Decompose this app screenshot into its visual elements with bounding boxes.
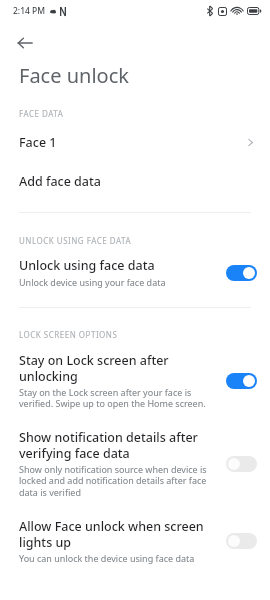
staticText: Face 1 xyxy=(19,134,245,151)
staticText: Unlock using face data xyxy=(19,257,155,274)
button[interactable]: Face 1 xyxy=(0,132,270,153)
staticText: FACE DATA xyxy=(19,108,64,119)
button[interactable]: Add face data xyxy=(0,171,270,192)
staticText: You can unlock the device using face dat… xyxy=(19,552,195,564)
staticText: Face unlock xyxy=(19,62,129,89)
staticText: LOCK SCREEN OPTIONS xyxy=(19,329,118,340)
button[interactable]: Back xyxy=(10,28,40,58)
staticText: UNLOCK USING FACE DATA xyxy=(19,235,131,246)
staticText: Unlock device using your face data xyxy=(19,276,166,288)
staticText: Stay on Lock screen after unlocking xyxy=(19,352,218,384)
button[interactable]: Off xyxy=(226,456,257,472)
button[interactable]: On xyxy=(226,373,257,389)
staticText: Add face data xyxy=(19,173,101,190)
staticText: Show notification details after verifyin… xyxy=(19,429,218,461)
staticText: Show only notification source when devic… xyxy=(19,463,218,499)
staticText: 2:14 PM xyxy=(13,5,46,17)
button[interactable]: Allow Face unlock when screen lights up xyxy=(0,518,270,564)
button[interactable]: On xyxy=(226,265,257,281)
staticText: Allow Face unlock when screen lights up xyxy=(19,518,218,550)
button[interactable]: Show notification details after verifyin… xyxy=(0,429,270,499)
button[interactable]: Stay on Lock screen after unlocking xyxy=(0,352,270,410)
button[interactable]: Unlock using face data xyxy=(0,257,270,288)
staticText: Stay on the Lock screen after your face … xyxy=(19,386,218,410)
button[interactable]: Off xyxy=(226,533,257,549)
